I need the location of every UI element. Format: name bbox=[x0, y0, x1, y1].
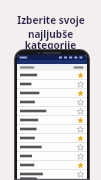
button[interactable]: Category, favourite bbox=[17, 116, 87, 125]
button[interactable]: Category, favourite bbox=[17, 161, 87, 170]
button[interactable]: Category, not favourite bbox=[17, 107, 87, 116]
button[interactable]: Category, not favourite bbox=[17, 170, 87, 179]
staticText: Izberite svoje bbox=[17, 13, 85, 27]
button[interactable]: Category, favourite bbox=[17, 71, 87, 80]
button[interactable]: Category, favourite bbox=[17, 134, 87, 143]
button[interactable]: Category, not favourite bbox=[17, 80, 87, 89]
button[interactable]: Category, not favourite bbox=[17, 125, 87, 134]
button[interactable]: Category, not favourite bbox=[17, 143, 87, 152]
button[interactable]: Category, not favourite bbox=[17, 152, 87, 161]
button[interactable]: Category, favourite bbox=[17, 89, 87, 98]
button[interactable]: Category, not favourite bbox=[17, 98, 87, 107]
staticText: najljubše kategorije bbox=[3, 27, 98, 52]
